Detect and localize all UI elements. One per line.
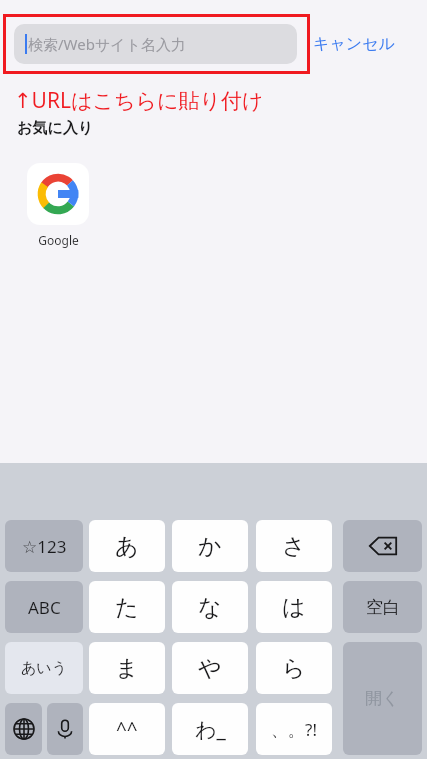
staticText: Google	[38, 232, 79, 248]
button[interactable]: 空白	[343, 581, 422, 633]
staticText: あ	[115, 532, 139, 561]
staticText: や	[198, 654, 222, 683]
button[interactable]: な	[172, 581, 248, 633]
button[interactable]: Google	[25, 163, 91, 248]
button[interactable]: 開く	[343, 642, 422, 755]
button[interactable]: Delete	[343, 520, 422, 572]
staticText: な	[198, 593, 222, 622]
button[interactable]: ^^	[89, 703, 165, 755]
staticText: わ_	[195, 715, 226, 744]
button[interactable]: あいう	[5, 642, 83, 694]
button[interactable]: 検索/Webサイト名入力	[14, 24, 297, 64]
staticText: キャンセル	[313, 34, 395, 54]
button[interactable]: あ	[89, 520, 165, 572]
button[interactable]: ま	[89, 642, 165, 694]
button[interactable]: わ_	[172, 703, 248, 755]
staticText: は	[282, 593, 306, 622]
button[interactable]: は	[256, 581, 332, 633]
button[interactable]: キャンセル	[313, 28, 395, 60]
staticText: ら	[282, 654, 306, 683]
staticText: ↑URLはこちらに貼り付け	[14, 86, 264, 115]
button[interactable]: Change keyboard	[5, 703, 42, 755]
button[interactable]: さ	[256, 520, 332, 572]
button[interactable]: 、。?!	[256, 703, 332, 755]
staticText: ABC	[28, 596, 61, 619]
staticText: 開く	[365, 688, 400, 709]
button[interactable]: や	[172, 642, 248, 694]
staticText: ^^	[116, 716, 138, 742]
staticText: お気に入り	[17, 119, 94, 138]
button[interactable]: ABC	[5, 581, 83, 633]
staticText: 検索/Webサイト名入力	[28, 34, 186, 54]
staticText: か	[198, 532, 222, 561]
staticText: ま	[115, 654, 139, 683]
button[interactable]: た	[89, 581, 165, 633]
staticText: 空白	[366, 597, 400, 618]
staticText: た	[115, 593, 139, 622]
staticText: ☆123	[22, 535, 67, 558]
button[interactable]: ☆123	[5, 520, 83, 572]
staticText: さ	[282, 532, 306, 561]
staticText: 、。?!	[271, 718, 317, 741]
button[interactable]: Voice input	[47, 703, 83, 755]
staticText: あいう	[21, 659, 68, 678]
button[interactable]: ら	[256, 642, 332, 694]
button[interactable]: か	[172, 520, 248, 572]
